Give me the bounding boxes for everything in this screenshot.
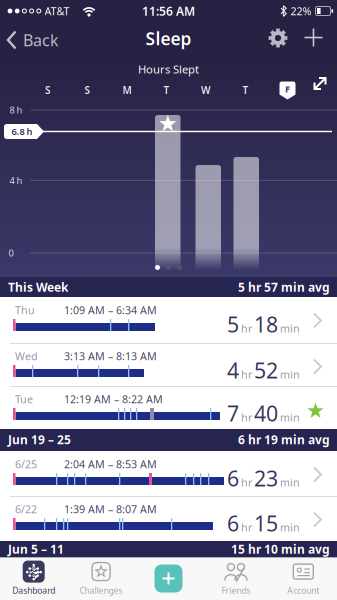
staticText: Tue (15, 392, 33, 406)
button[interactable]: Dashboard (0, 557, 67, 600)
button[interactable]: Wed (0, 343, 337, 386)
button[interactable]: Back (0, 22, 59, 58)
staticText: hr (241, 367, 252, 381)
staticText: This Week (8, 279, 68, 295)
button[interactable]: 6/25 (0, 451, 337, 496)
staticText: 22% (290, 4, 311, 18)
staticText: min (280, 475, 300, 489)
staticText: 40 (254, 399, 278, 427)
staticText: min (280, 367, 300, 381)
staticText: 8 h (9, 104, 22, 116)
staticText: Jun 5 – 11 (8, 541, 64, 557)
staticText: W (201, 83, 211, 97)
staticText: 52 (254, 356, 278, 384)
staticText: Dashboard (12, 585, 55, 596)
staticText: min (280, 520, 300, 534)
button[interactable]: Thu (0, 297, 337, 343)
staticText: M (122, 83, 131, 97)
staticText: 1:39 AM – 8:07 AM (64, 502, 157, 516)
staticText: 5 hr 57 min avg (238, 279, 330, 295)
staticText: min (280, 410, 300, 424)
staticText: Friends (221, 585, 250, 596)
staticText: AT&T (44, 4, 69, 18)
button[interactable]: Account (270, 557, 337, 600)
staticText: T (242, 83, 248, 97)
staticText: hr (241, 520, 252, 534)
staticText: F (285, 83, 290, 95)
staticText: hr (241, 410, 252, 424)
staticText: 15 (254, 509, 278, 537)
staticText: 12:19 AM – 8:22 AM (64, 392, 163, 406)
button[interactable]: Log (135, 557, 202, 600)
staticText: S (45, 83, 51, 97)
button[interactable]: Add (304, 28, 322, 46)
button[interactable]: Tue (0, 386, 337, 429)
staticText: 6 hr 19 min avg (238, 431, 330, 447)
staticText: 6/25 (15, 457, 37, 471)
staticText: 6 (227, 509, 239, 537)
staticText: 2:04 AM – 8:53 AM (64, 457, 157, 471)
staticText: Sleep (145, 27, 191, 50)
staticText: 6.8 h (11, 125, 32, 138)
staticText: hr (241, 321, 252, 335)
staticText: 4 h (9, 174, 22, 187)
button[interactable]: Expand chart (311, 75, 328, 92)
staticText: 4 (227, 356, 239, 384)
staticText: 7 (227, 399, 239, 427)
staticText: 23 (254, 464, 278, 492)
staticText: 15 hr 10 min avg (231, 541, 330, 557)
staticText: T (163, 83, 169, 97)
staticText: Thu (15, 303, 35, 317)
button[interactable]: Challenges (67, 557, 135, 600)
staticText: Back (23, 29, 59, 51)
staticText: Challenges (80, 585, 123, 596)
staticText: min (280, 321, 300, 335)
staticText: hr (241, 475, 252, 489)
button[interactable]: 6/22 (0, 496, 337, 541)
button[interactable]: Friends (202, 557, 270, 600)
button[interactable]: Settings (265, 25, 291, 51)
staticText: Wed (15, 349, 38, 363)
staticText: Jun 19 – 25 (8, 431, 71, 447)
staticText: S (84, 83, 90, 97)
staticText: Hours Slept (138, 61, 199, 77)
staticText: 18 (254, 310, 278, 338)
staticText: 1:09 AM – 6:34 AM (64, 303, 157, 317)
staticText: 0 (8, 247, 13, 259)
staticText: 3:13 AM – 8:13 AM (64, 349, 157, 363)
staticText: 6/22 (15, 502, 37, 516)
staticText: 11:56 AM (142, 3, 195, 19)
staticText: 5 (227, 310, 239, 338)
staticText: Account (287, 585, 319, 596)
staticText: 6 (227, 464, 239, 492)
